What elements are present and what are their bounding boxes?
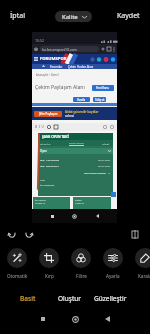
staticText: GÜNLÜK <box>40 142 51 145</box>
button[interactable]: Filtre <box>65 248 97 279</box>
staticText: Çekim 5.000 TL <box>75 199 84 205</box>
staticText: Kişi: 987654321 <box>40 164 59 167</box>
button[interactable]: Kaydet <box>111 5 146 27</box>
button[interactable]: Recents <box>34 310 52 328</box>
staticText: Ayarla <box>106 273 120 279</box>
button[interactable]: Kalite <box>55 11 92 22</box>
button[interactable]: Compare original <box>127 226 143 242</box>
staticText: ŞANS OYUN TAKİ <box>42 135 69 139</box>
staticText: Çekim Paylaşım Alanı <box>35 84 85 91</box>
staticText: Çekim Yardım Alanı <box>68 65 94 69</box>
staticText: Karala <box>138 273 150 279</box>
staticText: Oluştur <box>58 294 81 303</box>
button[interactable]: Ayarla <box>97 248 129 279</box>
staticText: İlk Yatırım 10.000 TL <box>35 199 46 205</box>
staticText: Kırp <box>45 273 54 279</box>
staticText: Yeni Konu <box>96 86 110 90</box>
staticText: Kişi: 123456789 <box>40 158 59 161</box>
button[interactable]: Redo <box>21 227 37 243</box>
button[interactable]: Güzelleştir <box>88 288 132 308</box>
staticText: Filtre <box>76 273 87 279</box>
staticText: Şifre Paylaşım <box>39 112 58 116</box>
button[interactable]: Kırp <box>33 248 65 279</box>
staticText: Güzelleştir <box>94 294 127 303</box>
button[interactable]: Karala <box>129 248 150 279</box>
staticText: Aidat güvenilir kayıtlar <box>65 110 99 114</box>
button[interactable]: Undo <box>4 227 20 243</box>
staticText: Oyun <box>40 149 48 153</box>
staticText: ››› <box>108 171 111 174</box>
button[interactable]: Oluştur <box>47 288 91 308</box>
button[interactable]: Home <box>66 310 84 328</box>
staticText: Size yardım edelim <box>84 171 107 174</box>
staticText: İyi Akşamlar <box>40 183 55 186</box>
staticText: Kaydet <box>117 11 140 21</box>
staticText: CANLI OYUN <box>69 141 84 144</box>
staticText: FORUMSPOR <box>40 56 67 62</box>
button[interactable]: Back <box>98 310 116 328</box>
staticText: Not: <box>40 178 45 181</box>
staticText: Takip et <box>95 98 105 102</box>
staticText: hx.forumsport10.com <box>42 47 77 52</box>
staticText: Otomatik <box>7 273 28 279</box>
staticText: İptal <box>10 11 25 21</box>
staticText: Forumlar <box>50 65 63 69</box>
staticText: adresi <box>65 114 75 118</box>
staticText: Kalite <box>62 13 78 21</box>
staticText: Basit <box>20 294 36 303</box>
staticText: 03.01.2024 <box>98 158 111 161</box>
button[interactable]: Basit <box>6 288 50 308</box>
staticText: Yanıtla <box>77 98 86 102</box>
staticText: 03.01.2024 <box>98 164 111 167</box>
button[interactable]: İptal <box>4 5 31 27</box>
staticText: Anasayfa > Genel <box>36 73 59 77</box>
staticText: TÜMÜ <box>102 142 110 145</box>
staticText: 10:52 <box>35 38 44 43</box>
button[interactable]: Otomatik <box>1 248 33 279</box>
staticText: B I U <box>35 125 44 129</box>
